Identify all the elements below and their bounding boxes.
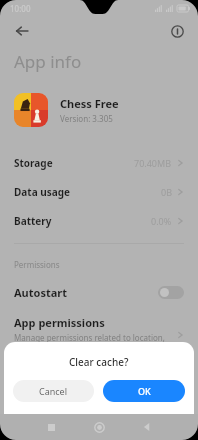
staticText: App info — [14, 50, 82, 73]
staticText: Manage permissions related to location, … — [14, 332, 171, 354]
button[interactable]: Data usage — [0, 177, 198, 206]
button[interactable]: Storage — [0, 148, 198, 177]
button[interactable]: App details — [166, 20, 188, 42]
button[interactable]: App permissions — [0, 313, 198, 356]
button[interactable]: Back — [138, 418, 156, 436]
staticText: 70.40MB — [134, 157, 172, 169]
button[interactable]: Home — [90, 418, 108, 436]
staticText: Data usage — [14, 185, 71, 199]
staticText: Clear cache? — [69, 355, 129, 369]
staticText: Autostart — [14, 285, 67, 300]
staticText: Permissions — [14, 259, 60, 270]
staticText: Cancel — [39, 385, 68, 397]
button[interactable]: Autostart — [0, 279, 198, 305]
button[interactable]: Battery — [0, 206, 198, 235]
staticText: 10:00 — [10, 3, 31, 14]
button[interactable]: Recents — [42, 418, 60, 436]
staticText: Storage — [14, 156, 53, 170]
button[interactable]: OK — [103, 380, 185, 402]
staticText: 0.0% — [151, 215, 172, 227]
staticText: Version: 3.305 — [60, 113, 113, 124]
staticText: Battery — [14, 214, 52, 228]
staticText: Chess Free — [60, 96, 119, 111]
button[interactable]: Back — [10, 19, 34, 43]
button[interactable]: Cancel — [13, 380, 94, 402]
staticText: 0B — [161, 186, 172, 198]
staticText: App permissions — [14, 315, 105, 330]
staticText: OK — [138, 385, 151, 397]
